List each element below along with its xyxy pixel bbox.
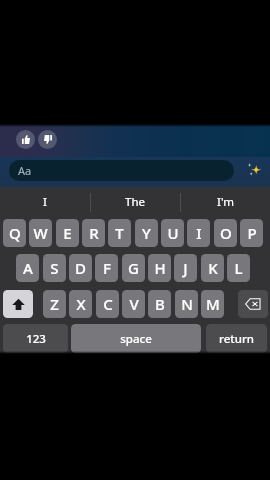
button[interactable]: The <box>90 189 180 214</box>
staticText: 123 <box>26 331 46 347</box>
staticText: F <box>103 258 111 278</box>
button[interactable]: P <box>240 219 263 247</box>
button[interactable]: F <box>95 254 118 282</box>
staticText: R <box>89 223 99 243</box>
button[interactable]: S <box>43 254 66 282</box>
staticText: Z <box>50 294 59 314</box>
staticText: The <box>125 194 145 210</box>
staticText: Y <box>142 223 151 243</box>
staticText: K <box>208 258 218 278</box>
staticText: space <box>120 331 152 347</box>
staticText: P <box>247 223 257 243</box>
staticText: M <box>206 294 220 314</box>
button[interactable]: return <box>206 324 267 353</box>
staticText: B <box>155 294 165 314</box>
button[interactable]: U <box>161 219 184 247</box>
button[interactable]: Z <box>43 290 66 318</box>
button[interactable]: J <box>174 254 197 282</box>
button[interactable]: W <box>29 219 52 247</box>
button[interactable]: C <box>96 290 119 318</box>
button[interactable]: E <box>56 219 79 247</box>
staticText: S <box>50 258 59 278</box>
staticText: T <box>115 223 124 243</box>
button[interactable]: N <box>175 290 198 318</box>
staticText: V <box>129 294 139 314</box>
button[interactable]: T <box>108 219 131 247</box>
button[interactable]: Thumbs down <box>38 130 57 149</box>
button[interactable]: V <box>122 290 145 318</box>
staticText: W <box>33 223 48 243</box>
button[interactable]: AI assist <box>243 158 265 180</box>
staticText: E <box>63 223 72 243</box>
staticText: L <box>234 258 243 278</box>
button[interactable]: I'm <box>180 189 270 214</box>
staticText: Q <box>9 223 21 243</box>
button[interactable]: X <box>69 290 92 318</box>
button[interactable]: B <box>148 290 171 318</box>
staticText: return <box>219 331 254 347</box>
button[interactable]: 123 <box>3 324 68 353</box>
button[interactable]: D <box>69 254 92 282</box>
button[interactable]: K <box>201 254 224 282</box>
button[interactable]: R <box>82 219 105 247</box>
staticText: I'm <box>217 194 234 210</box>
button[interactable]: M <box>201 290 224 318</box>
staticText: G <box>128 258 139 278</box>
button[interactable]: space <box>71 324 201 353</box>
button[interactable]: H <box>148 254 171 282</box>
staticText: J <box>183 258 188 278</box>
staticText: C <box>103 294 113 314</box>
staticText: X <box>76 294 86 314</box>
button[interactable]: O <box>214 219 237 247</box>
staticText: D <box>75 258 86 278</box>
button[interactable]: A <box>16 254 39 282</box>
staticText: I <box>196 223 202 243</box>
button[interactable]: I <box>0 189 90 214</box>
button[interactable]: Shift <box>3 290 33 318</box>
button[interactable]: I <box>187 219 210 247</box>
staticText: I <box>43 194 47 210</box>
staticText: Aa <box>18 163 32 178</box>
button[interactable]: Thumbs up <box>16 130 35 149</box>
staticText: N <box>181 294 193 314</box>
button[interactable]: L <box>227 254 250 282</box>
button[interactable]: Q <box>3 219 26 247</box>
staticText: O <box>220 223 232 243</box>
staticText: A <box>23 258 33 278</box>
button[interactable]: Aa <box>9 160 234 181</box>
button[interactable]: G <box>122 254 145 282</box>
button[interactable]: Y <box>135 219 158 247</box>
button[interactable]: Backspace <box>238 290 268 318</box>
staticText: H <box>154 258 166 278</box>
staticText: U <box>167 223 179 243</box>
